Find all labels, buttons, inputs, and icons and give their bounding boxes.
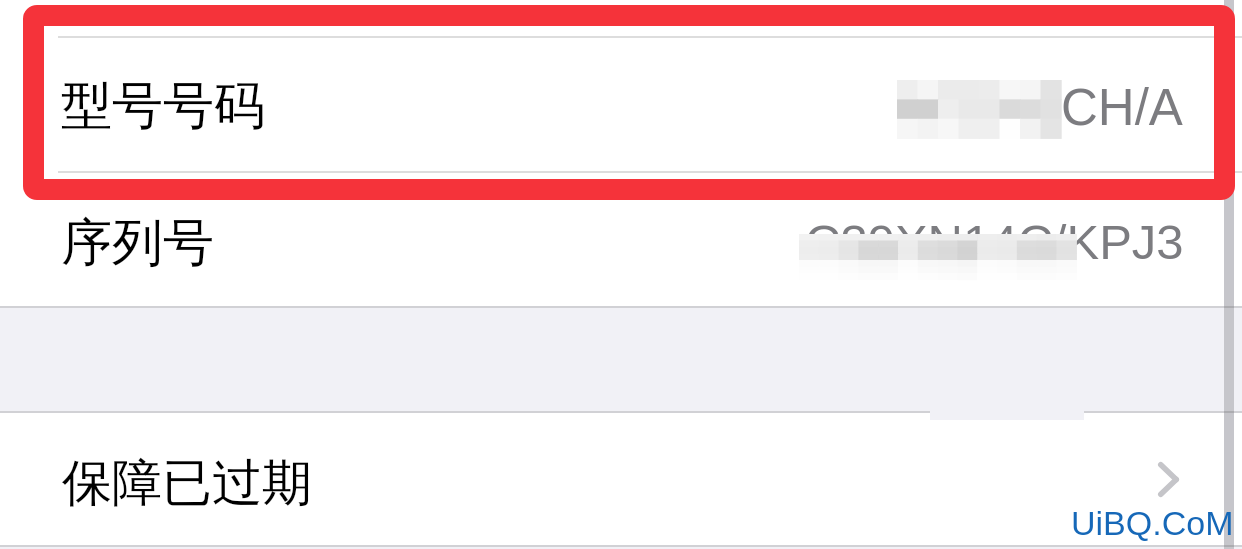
button[interactable]: 保障已过期 bbox=[0, 413, 1242, 545]
other: Open warranty details bbox=[1158, 462, 1179, 497]
button[interactable]: 型号号码 bbox=[0, 38, 1242, 171]
staticText: 型号号码 bbox=[61, 74, 265, 138]
staticText: UiBQ.CoM bbox=[1071, 504, 1234, 542]
staticText: C39XN14C/KPJ3 bbox=[805, 215, 1184, 270]
staticText: CH/A bbox=[1061, 79, 1183, 136]
staticText: 序列号 bbox=[61, 211, 214, 275]
button[interactable]: 序列号 bbox=[0, 173, 1242, 306]
staticText: 保障已过期 bbox=[62, 452, 312, 515]
